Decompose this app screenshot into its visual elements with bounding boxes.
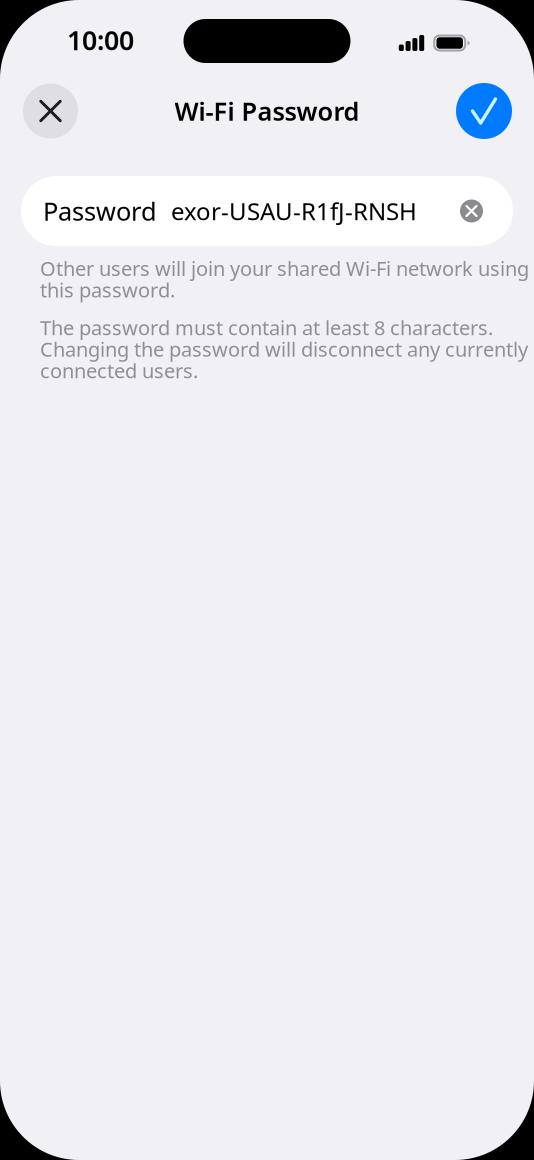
staticText: The password must contain at least 8 cha…: [40, 314, 528, 384]
button[interactable]: Close: [23, 83, 78, 138]
staticText: Wi-Fi Password: [174, 94, 359, 128]
button[interactable]: Save password: [456, 83, 512, 139]
staticText: 10:00: [67, 22, 134, 58]
staticText: Password: [43, 194, 157, 228]
button[interactable]: exor-USAU-R1fJ-RNSH: [21, 176, 513, 246]
staticText: exor-USAU-R1fJ-RNSH: [171, 195, 417, 227]
staticText: Other users will join your shared Wi-Fi …: [40, 255, 529, 303]
button[interactable]: Clear password: [446, 177, 513, 244]
